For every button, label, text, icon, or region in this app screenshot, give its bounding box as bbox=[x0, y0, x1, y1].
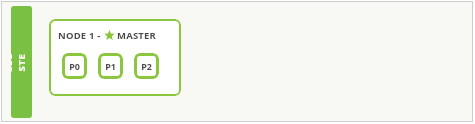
button[interactable]: NODE 1 - bbox=[49, 19, 181, 96]
button[interactable]: P2 bbox=[134, 53, 159, 79]
staticText: NODE 1 - bbox=[58, 29, 101, 42]
staticText: P1 bbox=[105, 60, 116, 72]
staticText: P0 bbox=[69, 60, 80, 72]
staticText: CLUSTER bbox=[11, 52, 32, 73]
button[interactable]: P1 bbox=[98, 53, 123, 79]
other: Master node bbox=[104, 30, 115, 41]
button[interactable]: P0 bbox=[62, 53, 87, 79]
button[interactable]: CLUSTER bbox=[11, 6, 32, 118]
staticText: P2 bbox=[141, 60, 152, 72]
staticText: MASTER bbox=[117, 29, 157, 42]
